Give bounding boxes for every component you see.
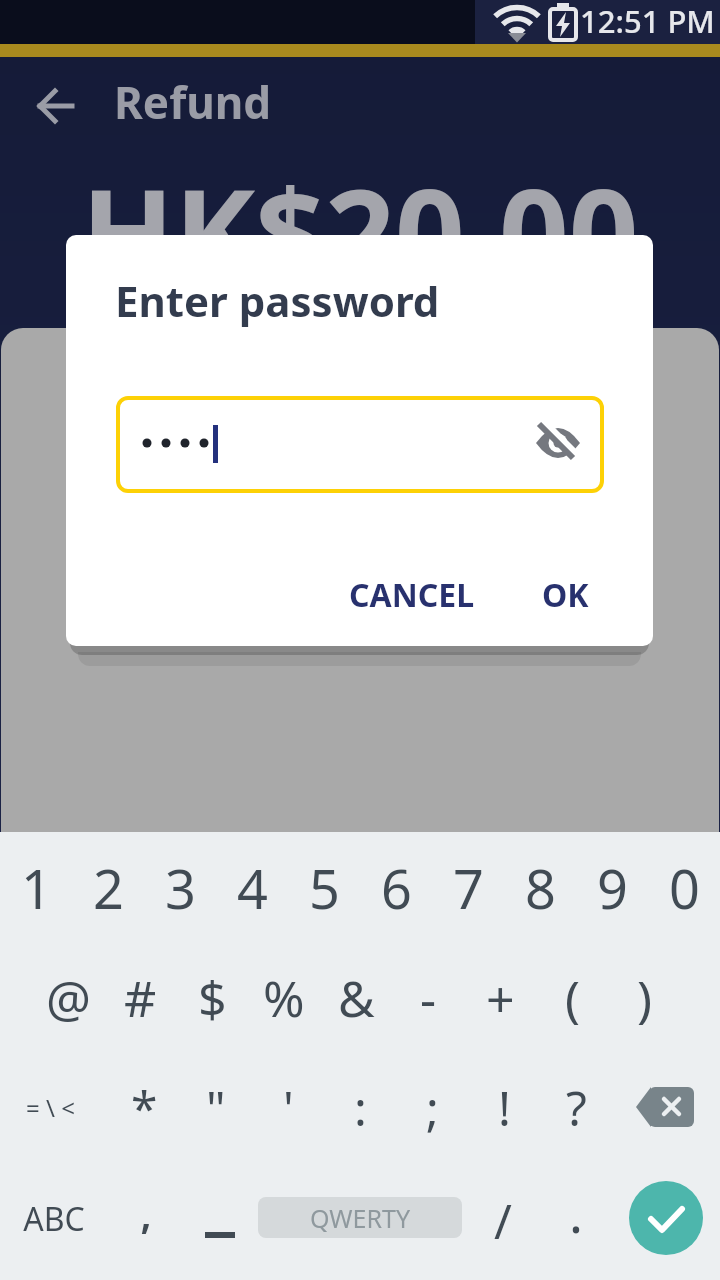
button[interactable]: 6: [360, 850, 432, 926]
button[interactable]: +: [464, 960, 536, 1036]
button[interactable]: [629, 1181, 703, 1255]
staticText: ;: [426, 1075, 439, 1140]
staticText: ': [283, 1075, 294, 1140]
staticText: Enter password: [115, 272, 440, 329]
staticText: ?: [566, 1075, 587, 1140]
staticText: /: [494, 1188, 512, 1248]
staticText: 8: [525, 851, 556, 925]
staticText: 1: [21, 851, 52, 925]
button[interactable]: [636, 1087, 696, 1127]
button[interactable]: 3: [144, 850, 216, 926]
button[interactable]: 1: [0, 850, 72, 926]
staticText: 9: [597, 851, 628, 925]
staticText: $: [198, 964, 227, 1032]
staticText: OK: [542, 573, 589, 617]
staticText: QWERTY: [310, 1201, 411, 1235]
button[interactable]: (: [536, 960, 608, 1036]
button[interactable]: 9: [576, 850, 648, 926]
staticText: 6: [381, 851, 412, 925]
staticText: +: [486, 964, 515, 1032]
staticText: *: [131, 1075, 158, 1140]
button[interactable]: $: [176, 960, 248, 1036]
button[interactable]: 2: [72, 850, 144, 926]
button[interactable]: %: [248, 960, 320, 1036]
staticText: #: [124, 964, 157, 1032]
button[interactable]: [36, 86, 76, 126]
button[interactable]: #: [104, 960, 176, 1036]
staticText: &: [338, 964, 375, 1032]
button[interactable]: ': [252, 1069, 324, 1145]
staticText: ,: [139, 1174, 153, 1234]
staticText: ABC: [23, 1197, 85, 1241]
button[interactable]: 8: [504, 850, 576, 926]
button[interactable]: *: [108, 1069, 180, 1145]
staticText: 3: [165, 851, 196, 925]
staticText: HK$20.00: [81, 148, 639, 314]
staticText: ": [206, 1075, 226, 1140]
button[interactable]: ;: [396, 1069, 468, 1145]
staticText: .: [569, 1177, 583, 1237]
button[interactable]: CANCEL: [327, 565, 497, 625]
staticText: 2: [93, 851, 124, 925]
staticText: 4: [237, 851, 268, 925]
button[interactable]: 4: [216, 850, 288, 926]
button[interactable]: -: [392, 960, 464, 1036]
button[interactable]: 5: [288, 850, 360, 926]
button[interactable]: ?: [540, 1069, 612, 1145]
staticText: ): [637, 964, 652, 1032]
staticText: 0: [669, 851, 700, 925]
staticText: 12:51 PM: [580, 0, 715, 42]
staticText: = \ <: [26, 1091, 75, 1124]
button[interactable]: @: [32, 960, 104, 1036]
staticText: -: [420, 964, 437, 1032]
button[interactable]: ": [180, 1069, 252, 1145]
staticText: Refund: [114, 72, 272, 132]
staticText: (: [565, 964, 580, 1032]
button[interactable]: 0: [648, 850, 720, 926]
staticText: CANCEL: [349, 573, 475, 617]
staticText: %: [263, 964, 305, 1032]
staticText: 5: [309, 851, 340, 925]
staticText: !: [498, 1075, 511, 1140]
button[interactable]: !: [468, 1069, 540, 1145]
button[interactable]: ): [608, 960, 680, 1036]
button[interactable]: QWERTY: [258, 1197, 462, 1238]
staticText: :: [354, 1075, 367, 1140]
button[interactable]: &: [320, 960, 392, 1036]
button[interactable]: :: [324, 1069, 396, 1145]
button[interactable]: OK: [515, 565, 615, 625]
button[interactable]: 7: [432, 850, 504, 926]
staticText: 7: [453, 851, 484, 925]
staticText: @: [46, 964, 91, 1032]
